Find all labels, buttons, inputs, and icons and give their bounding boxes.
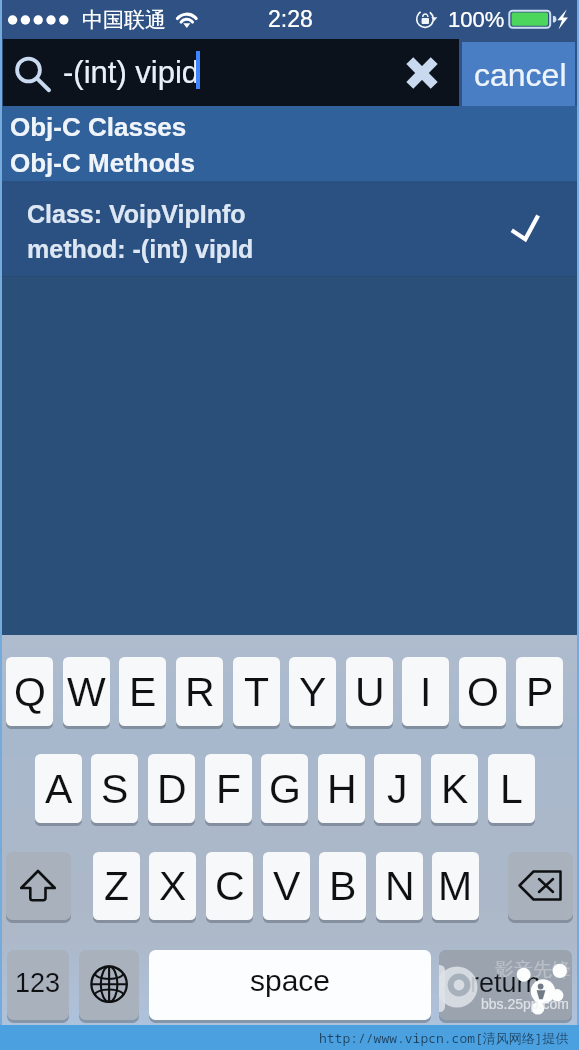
staticText: 123 (15, 968, 61, 998)
button[interactable]: I (402, 657, 449, 726)
staticText: 100% (448, 7, 505, 32)
staticText: L (500, 766, 523, 812)
button[interactable]: Q (6, 657, 53, 726)
button[interactable]: R (176, 657, 223, 726)
button[interactable]: G (261, 754, 308, 823)
button[interactable]: cancel (462, 42, 575, 106)
button[interactable]: M (432, 852, 479, 920)
staticText: I (420, 669, 432, 715)
button[interactable]: Obj-C Classes (10, 110, 270, 143)
button[interactable]: Switch keyboard (79, 950, 139, 1020)
button[interactable]: K (431, 754, 478, 823)
button[interactable]: S (91, 754, 138, 823)
staticText: method: -(int) vipId (27, 235, 254, 263)
staticText: space (250, 964, 331, 998)
staticText: W (67, 669, 106, 715)
button[interactable]: X (149, 852, 196, 920)
staticText: bbs.25pp.com (481, 996, 569, 1012)
staticText: Y (299, 669, 327, 715)
button[interactable]: E (119, 657, 166, 726)
button[interactable]: P (516, 657, 563, 726)
staticText: Obj-C Methods (10, 148, 195, 177)
button[interactable] (0, 181, 579, 277)
staticText: Z (104, 863, 130, 909)
staticText: G (269, 766, 301, 812)
button[interactable]: H (318, 754, 365, 823)
staticText: F (216, 766, 242, 812)
staticText: P (526, 669, 554, 715)
staticText: D (157, 766, 187, 812)
button[interactable]: Shift (6, 852, 71, 920)
staticText: B (329, 863, 357, 909)
button[interactable]: Obj-C Methods (10, 146, 270, 179)
staticText: H (327, 766, 357, 812)
staticText: A (45, 766, 73, 812)
button[interactable]: Z (93, 852, 140, 920)
button[interactable]: L (488, 754, 535, 823)
staticText: 2:28 (268, 6, 313, 32)
staticText: Q (14, 669, 46, 715)
staticText: R (185, 669, 215, 715)
button[interactable]: Clear text (396, 48, 446, 98)
button[interactable]: Backspace (508, 852, 573, 920)
button[interactable]: B (319, 852, 366, 920)
staticText: O (467, 669, 499, 715)
button[interactable]: D (148, 754, 195, 823)
staticText: M (438, 863, 473, 909)
button[interactable]: return (439, 950, 572, 1020)
staticText: T (244, 669, 270, 715)
button[interactable]: N (376, 852, 423, 920)
button[interactable]: Y (289, 657, 336, 726)
staticText: U (355, 669, 385, 715)
staticText: V (273, 863, 301, 909)
button[interactable]: A (35, 754, 82, 823)
staticText: J (387, 766, 408, 812)
button[interactable]: J (374, 754, 421, 823)
staticText: E (129, 669, 157, 715)
staticText: cancel (474, 57, 567, 93)
button[interactable]: space (149, 950, 431, 1020)
staticText: Obj-C Classes (10, 112, 187, 141)
button[interactable]: O (459, 657, 506, 726)
staticText: return (470, 968, 541, 998)
button[interactable]: W (63, 657, 110, 726)
staticText: C (215, 863, 245, 909)
staticText: X (159, 863, 187, 909)
button[interactable]: C (206, 852, 253, 920)
staticText: S (101, 766, 129, 812)
staticText: Class: VoipVipInfo (27, 200, 246, 228)
button[interactable]: F (205, 754, 252, 823)
staticText: -(int) vipid (63, 55, 200, 90)
staticText: 中国联通 (82, 7, 166, 33)
button[interactable]: V (263, 852, 310, 920)
button[interactable] (3, 39, 459, 106)
button[interactable]: 123 (7, 950, 69, 1020)
staticText: N (385, 863, 415, 909)
staticText: K (441, 766, 469, 812)
button[interactable]: U (346, 657, 393, 726)
staticText: 影音先锋 (495, 958, 571, 982)
button[interactable]: T (233, 657, 280, 726)
staticText: http://www.vipcn.com[清风网络]提供 (319, 1029, 569, 1047)
